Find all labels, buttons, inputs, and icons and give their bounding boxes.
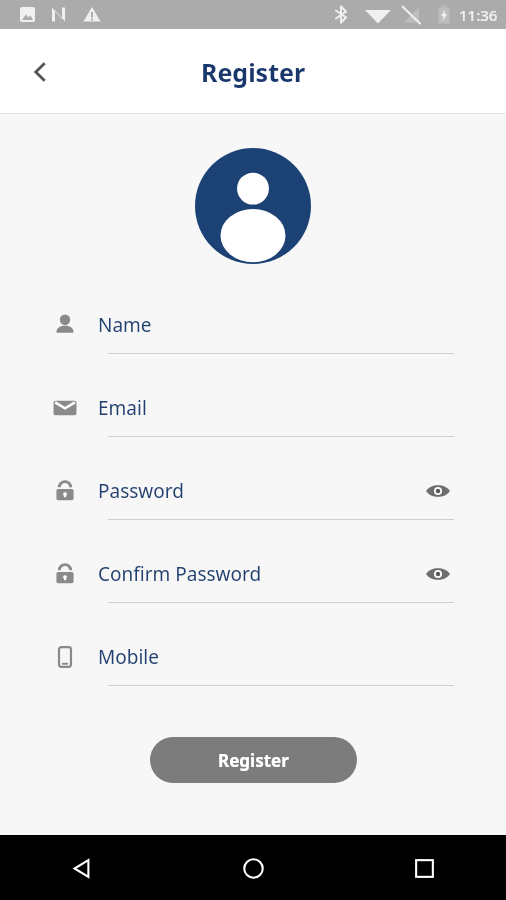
button[interactable]: Confirm Password: [0, 545, 506, 628]
staticText: Register: [201, 55, 306, 89]
button[interactable]: Show password: [422, 475, 454, 507]
button[interactable]: Back: [58, 844, 106, 892]
button[interactable]: Home: [229, 844, 277, 892]
button[interactable]: Email: [0, 379, 506, 462]
button[interactable]: Show password: [422, 558, 454, 590]
button[interactable]: Name: [0, 296, 506, 379]
staticText: Email: [98, 395, 147, 421]
staticText: Name: [98, 312, 152, 338]
staticText: Register: [218, 749, 289, 772]
staticText: Mobile: [98, 644, 159, 670]
button[interactable]: Mobile: [0, 628, 506, 711]
staticText: 11:36: [459, 5, 498, 25]
staticText: Password: [98, 478, 184, 504]
button[interactable]: Back: [14, 46, 66, 98]
button[interactable]: Recent apps: [400, 844, 448, 892]
button[interactable]: Password: [0, 462, 506, 545]
staticText: Confirm Password: [98, 561, 262, 587]
button[interactable]: Register: [150, 737, 357, 783]
